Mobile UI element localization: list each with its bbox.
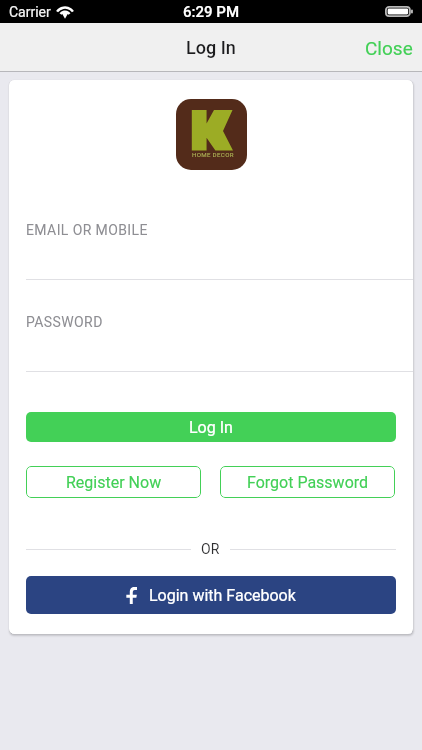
staticText: OR: [201, 541, 220, 557]
staticText: Forgot Password: [247, 473, 369, 492]
staticText: Register Now: [66, 473, 162, 492]
button[interactable]: Login with Facebook: [26, 576, 396, 614]
staticText: PASSWORD: [26, 314, 103, 330]
staticText: HOME DECOR: [192, 151, 234, 158]
staticText: EMAIL OR MOBILE: [26, 222, 148, 238]
staticText: Carrier: [9, 4, 51, 20]
staticText: 6:29 PM: [183, 3, 240, 21]
staticText: Log In: [189, 418, 233, 437]
button[interactable]: Log In: [26, 412, 396, 442]
button[interactable]: Close: [351, 25, 422, 71]
button[interactable]: Register Now: [26, 466, 201, 498]
staticText: Close: [365, 37, 413, 59]
staticText: Login with Facebook: [149, 586, 296, 605]
button[interactable]: Forgot Password: [220, 466, 395, 498]
staticText: Log In: [186, 37, 236, 58]
